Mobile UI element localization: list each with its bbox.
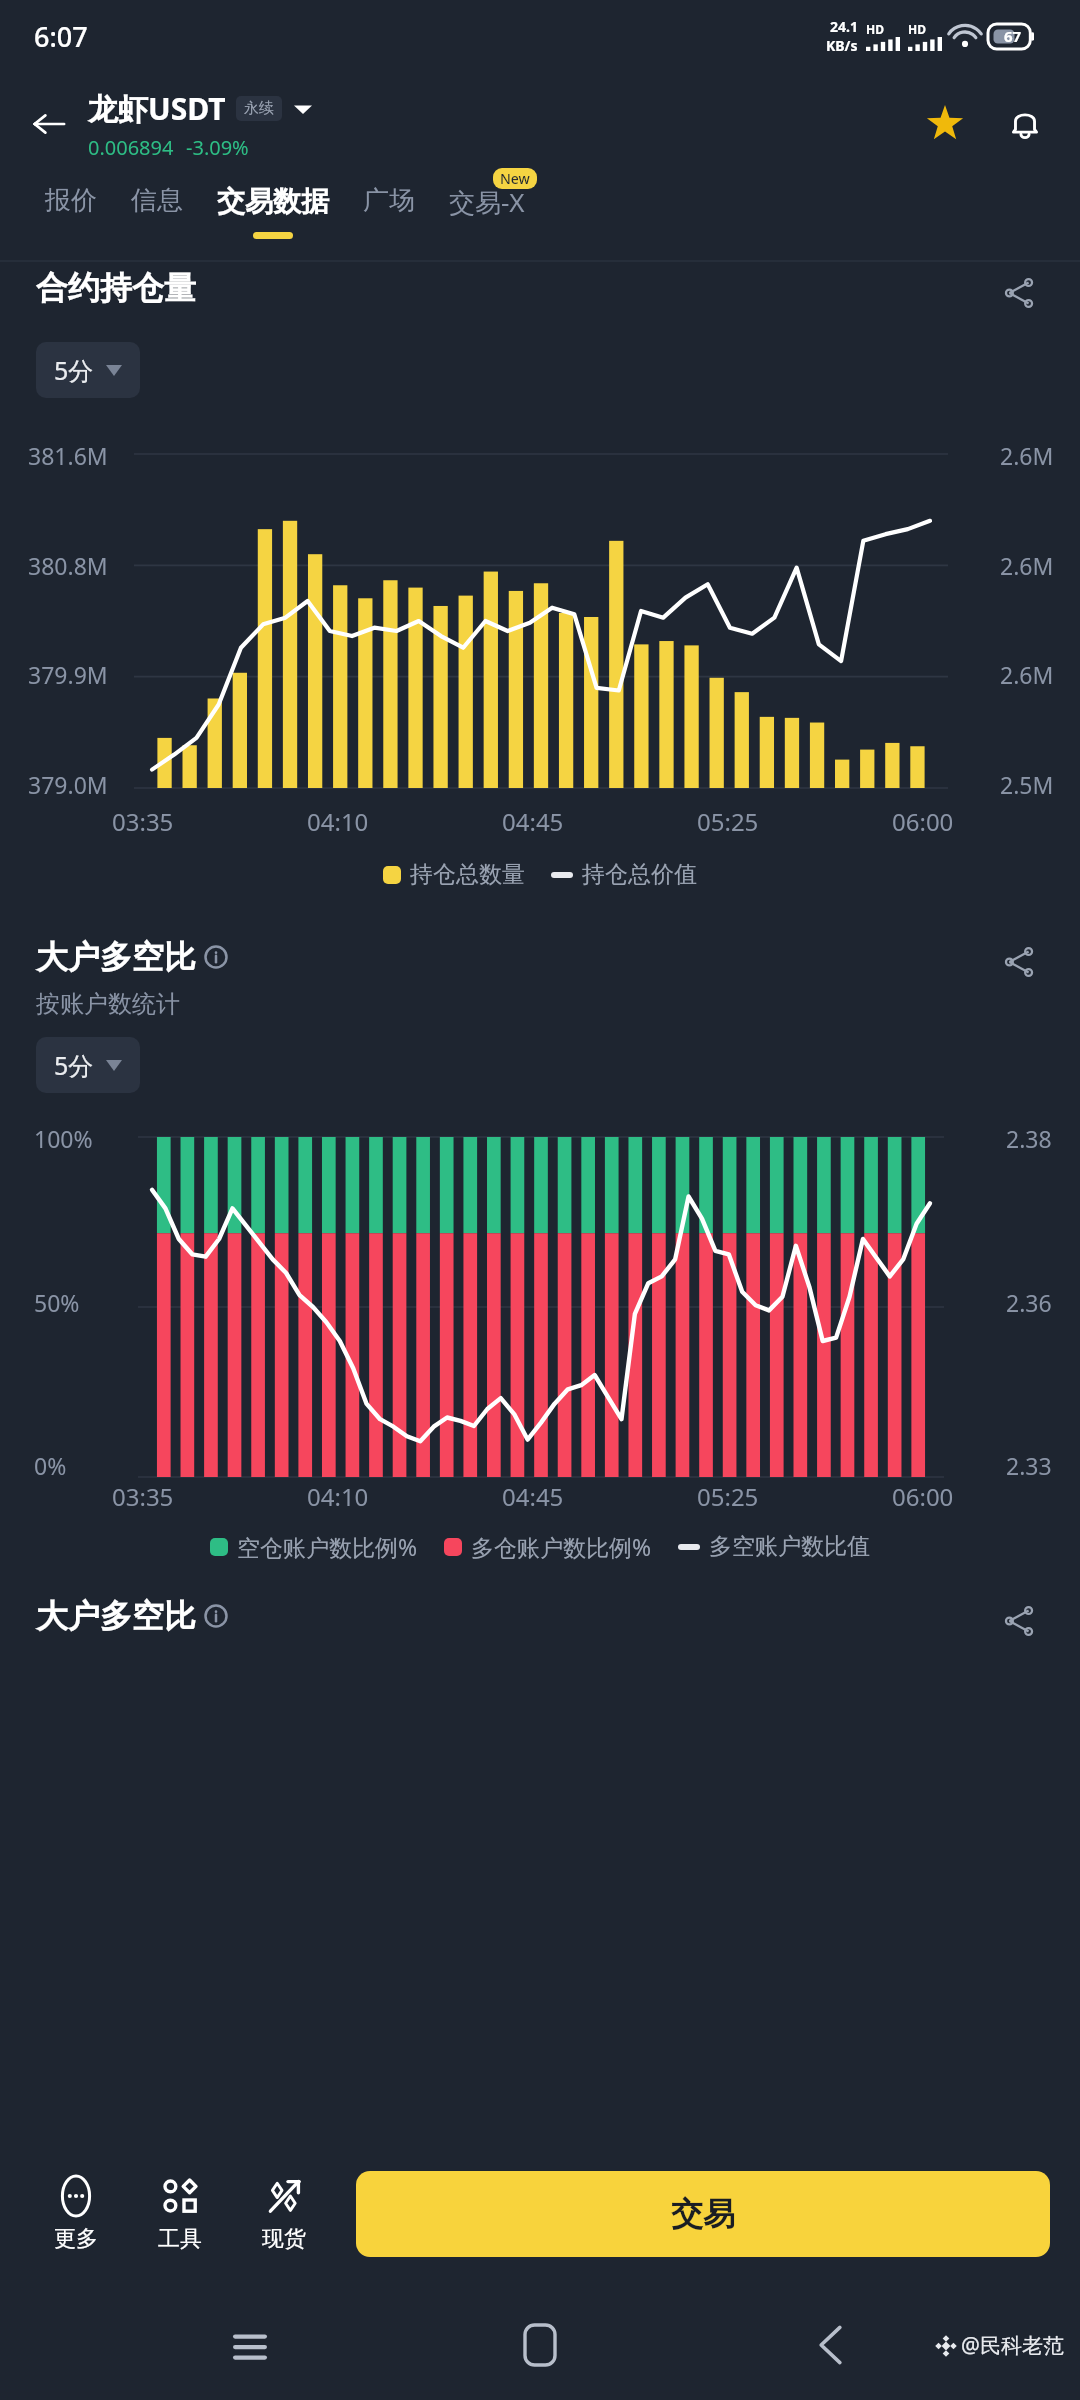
staticText: 5分 bbox=[54, 1048, 94, 1082]
staticText: 大户多空比 bbox=[36, 1596, 196, 1636]
staticText: 04:10 bbox=[307, 805, 385, 838]
staticText: 报价 bbox=[45, 184, 97, 217]
staticText: 信息 bbox=[131, 184, 183, 217]
staticText: 持仓总数量 bbox=[410, 860, 525, 889]
staticText: 03:35 bbox=[112, 805, 190, 838]
staticText: 67 bbox=[1004, 26, 1022, 46]
staticText: 多仓账户数比例% bbox=[471, 1531, 652, 1562]
staticText: 05:25 bbox=[697, 805, 775, 838]
staticText: 多空账户数比值 bbox=[709, 1532, 870, 1561]
staticText: 06:00 bbox=[892, 1480, 970, 1513]
staticText: 交易-X bbox=[449, 184, 525, 220]
staticText: 合约持仓量 bbox=[36, 268, 196, 308]
staticText: 380.8M bbox=[28, 550, 108, 581]
staticText: 03:35 bbox=[112, 1480, 190, 1513]
staticText: 交易数据 bbox=[217, 184, 329, 219]
button[interactable]: Home bbox=[500, 2305, 580, 2385]
staticText: 24.1 bbox=[830, 17, 858, 36]
button[interactable]: Select pair bbox=[294, 100, 312, 118]
staticText: 0.006894 bbox=[88, 134, 174, 161]
staticText: New bbox=[500, 169, 530, 188]
staticText: 100% bbox=[34, 1123, 93, 1154]
button[interactable]: 广场 bbox=[346, 176, 432, 260]
button[interactable]: Back bbox=[18, 93, 80, 155]
staticText: 工具 bbox=[158, 2225, 202, 2253]
staticText: 379.0M bbox=[28, 769, 108, 800]
button[interactable]: 交易数据 bbox=[200, 176, 346, 260]
staticText: 0% bbox=[34, 1450, 67, 1481]
staticText: 现货 bbox=[262, 2225, 306, 2253]
staticText: -3.09% bbox=[186, 134, 249, 161]
button[interactable]: Share bbox=[994, 268, 1044, 318]
staticText: 2.5M bbox=[1000, 769, 1054, 800]
staticText: 04:45 bbox=[502, 1480, 580, 1513]
staticText: 50% bbox=[34, 1287, 80, 1318]
staticText: KB/s bbox=[826, 36, 858, 55]
button[interactable]: Favorite bbox=[916, 95, 974, 153]
staticText: 龙虾USDT bbox=[88, 88, 226, 129]
button[interactable]: 更多 bbox=[30, 2170, 122, 2259]
staticText: 04:10 bbox=[307, 1480, 385, 1513]
staticText: 空仓账户数比例% bbox=[237, 1531, 418, 1562]
button[interactable]: 5分 bbox=[36, 1037, 140, 1093]
staticText: @民科老范 bbox=[961, 2331, 1064, 2360]
staticText: 交易 bbox=[671, 2194, 735, 2234]
staticText: 按账户数统计 bbox=[36, 989, 180, 1019]
staticText: HD bbox=[866, 21, 884, 37]
button[interactable]: Recent apps bbox=[210, 2305, 290, 2385]
staticText: 广场 bbox=[363, 184, 415, 217]
staticText: 6:07 bbox=[34, 18, 88, 55]
button[interactable]: 报价 bbox=[28, 176, 114, 260]
staticText: 379.9M bbox=[28, 659, 108, 690]
staticText: 05:25 bbox=[697, 1480, 775, 1513]
staticText: 2.33 bbox=[1006, 1450, 1052, 1481]
staticText: 2.6M bbox=[1000, 659, 1054, 690]
button[interactable]: 现货 bbox=[238, 2170, 330, 2259]
staticText: 06:00 bbox=[892, 805, 970, 838]
button[interactable]: 5分 bbox=[36, 342, 140, 398]
button[interactable]: Back bbox=[790, 2305, 870, 2385]
staticText: 2.38 bbox=[1006, 1123, 1052, 1154]
button[interactable]: Share bbox=[994, 937, 1044, 987]
staticText: 更多 bbox=[54, 2225, 98, 2253]
staticText: 2.6M bbox=[1000, 440, 1054, 471]
button[interactable]: 交易 bbox=[356, 2171, 1050, 2257]
staticText: 381.6M bbox=[28, 440, 108, 471]
staticText: HD bbox=[908, 21, 926, 37]
staticText: 04:45 bbox=[502, 805, 580, 838]
staticText: 5分 bbox=[54, 353, 94, 387]
staticText: 大户多空比 bbox=[36, 937, 196, 977]
staticText: 2.6M bbox=[1000, 550, 1054, 581]
button[interactable]: 工具 bbox=[134, 2170, 226, 2259]
staticText: 2.36 bbox=[1006, 1287, 1052, 1318]
staticText: 永续 bbox=[244, 99, 274, 118]
button[interactable]: Share bbox=[994, 1596, 1044, 1646]
button[interactable]: 交易-X bbox=[432, 176, 542, 260]
staticText: 持仓总价值 bbox=[582, 860, 697, 889]
button[interactable]: 信息 bbox=[114, 176, 200, 260]
button[interactable]: Notifications bbox=[996, 95, 1054, 153]
